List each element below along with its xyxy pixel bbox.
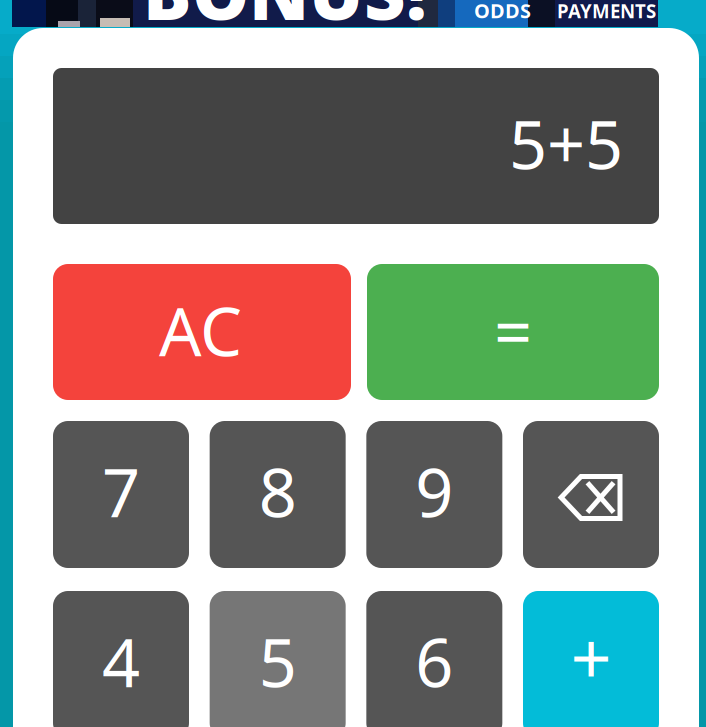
button[interactable]: = [367,264,659,400]
staticText: 7 [102,447,140,536]
staticText: 5+5 [509,99,623,188]
staticText: ODDS [474,0,531,24]
staticText: 4 [102,617,140,706]
staticText: 9 [415,447,453,536]
staticText: AC [159,286,242,375]
button[interactable]: AC [53,264,351,400]
button[interactable]: 9 [366,421,502,568]
staticText: + [570,609,611,704]
button[interactable]: 4 [53,591,189,727]
staticText: 6 [415,617,453,706]
staticText: BONUS! [143,0,427,40]
button[interactable]: 6 [366,591,502,727]
button[interactable]: 5 [210,591,346,727]
button[interactable]: 7 [53,421,189,568]
staticText: PAYMENTS [557,0,656,23]
staticText: 5 [259,617,297,706]
button[interactable]: + [523,591,659,727]
button[interactable]: Delete [523,421,659,568]
button[interactable]: 8 [210,421,346,568]
staticText: = [494,287,532,375]
staticText: 8 [259,447,297,536]
